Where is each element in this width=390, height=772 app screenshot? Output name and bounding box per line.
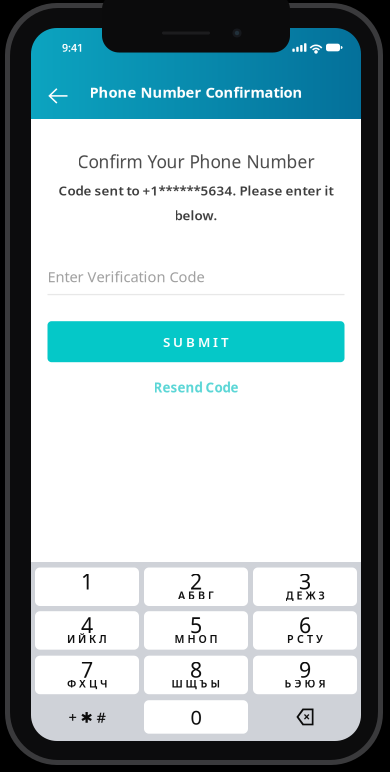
staticText: below. <box>174 206 217 224</box>
button[interactable]: 8 <box>144 656 248 694</box>
button[interactable]: 4 <box>35 611 139 650</box>
staticText: М Н О П <box>174 632 217 646</box>
staticText: 5 <box>190 611 202 639</box>
staticText: 3 <box>299 567 311 595</box>
staticText: Ф Х Ц Ч <box>67 676 107 691</box>
staticText: И Й К Л <box>67 632 107 646</box>
staticText: 9 <box>299 655 311 684</box>
staticText: 7 <box>81 655 93 684</box>
staticText: × <box>303 709 310 724</box>
button[interactable]: Delete <box>253 700 357 734</box>
staticText: Resend Code <box>153 378 238 396</box>
button[interactable]: 9 <box>253 656 357 694</box>
staticText: Code sent to +1******5634. Please enter … <box>58 181 333 199</box>
staticText: 8 <box>190 655 202 684</box>
button[interactable]: 0 <box>144 700 248 734</box>
staticText: S U B M I T <box>163 333 229 351</box>
button[interactable]: 7 <box>35 656 139 694</box>
button[interactable]: 6 <box>253 611 357 650</box>
button[interactable]: 1 <box>35 567 139 606</box>
staticText: 0 <box>190 704 201 730</box>
staticText: + ✱ # <box>68 707 105 727</box>
staticText: Confirm Your Phone Number <box>77 150 314 173</box>
button[interactable]: S U B M I T <box>47 321 344 362</box>
button[interactable]: 2 <box>144 567 248 606</box>
staticText: Ь Э Ю Я <box>284 676 325 691</box>
staticText: Ш Щ Ъ Ы <box>171 676 220 691</box>
staticText: 4 <box>81 611 93 639</box>
staticText: 6 <box>299 611 311 639</box>
staticText: Phone Number Confirmation <box>89 82 302 102</box>
staticText: 9:41 <box>62 40 83 55</box>
staticText: Р С Т У <box>287 632 323 646</box>
staticText: А Б В Г <box>178 588 214 602</box>
button[interactable]: 3 <box>253 567 357 606</box>
staticText: Д Е Ж З <box>285 588 324 602</box>
staticText: 1 <box>81 567 93 595</box>
button[interactable]: Symbols <box>35 700 139 734</box>
button[interactable]: Resend Code <box>153 378 238 396</box>
staticText: 2 <box>190 567 202 595</box>
button[interactable]: 5 <box>144 611 248 650</box>
staticText: Enter Verification Code <box>47 267 204 286</box>
button[interactable]: Back <box>40 77 76 107</box>
